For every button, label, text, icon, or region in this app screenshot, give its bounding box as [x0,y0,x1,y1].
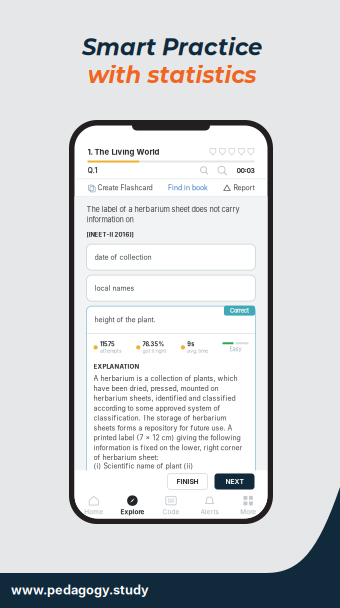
staticText: Easy [229,346,241,353]
staticText: FINISH [176,477,198,486]
staticText: local names [94,284,134,292]
staticText: 1. The Living World [87,147,159,156]
staticText: Find in book [168,183,208,192]
staticText: avg. time [187,348,208,354]
staticText: Common/vernacular name (iii) Family (iv) [93,470,232,479]
staticText: Create Flashcard [97,183,152,192]
button[interactable]: Home [74,495,113,516]
button[interactable]: Alerts [190,495,229,516]
button[interactable]: Report [223,183,254,192]
button[interactable]: Code [152,495,190,516]
staticText: date of collection [94,253,151,261]
button[interactable]: FINISH [167,473,207,490]
staticText: 00:03 [236,166,254,175]
staticText: 9s [187,341,194,348]
staticText: More [240,508,256,516]
staticText: attempts [100,348,122,354]
button[interactable]: NEXT [214,473,254,490]
staticText: height of the plant. [94,315,155,324]
staticText: 11575 [100,341,115,348]
staticText: Q.1 [87,166,97,175]
staticText: Code [162,508,179,516]
staticText: Explore [120,508,144,516]
staticText: with statistics [87,61,256,89]
button[interactable]: Explore [113,495,152,516]
staticText: NEXT [225,477,243,486]
button[interactable]: date of collection [86,244,255,270]
button[interactable]: Create Flashcard [87,183,152,192]
staticText: A herbarium is a collection of plants, w… [93,374,242,462]
staticText: www.pedagogy.study [11,582,149,598]
button[interactable]: More [229,495,267,516]
button[interactable]: local names [86,275,255,301]
staticText: Home [84,508,103,516]
staticText: Report [233,183,254,192]
staticText: 76.35% [143,341,165,348]
staticText: got it right [143,348,167,354]
staticText: Smart Practice [82,33,262,61]
staticText: The label of a herbarium sheet does not … [86,205,239,224]
staticText: [(NEET-II 2016)] [86,231,133,238]
staticText: (i) Scientific name of plant (ii) [93,462,193,470]
staticText: Correct [230,307,249,314]
button[interactable]: Find in book [168,183,208,192]
staticText: EXPLANATION [93,363,139,370]
staticText: Alerts [201,508,219,516]
